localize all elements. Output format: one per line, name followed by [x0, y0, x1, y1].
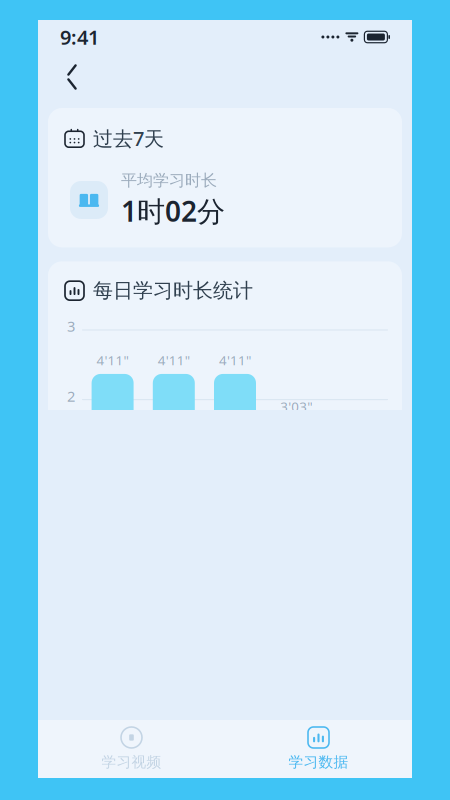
staticText: 3: [67, 316, 75, 336]
staticText: 过去7天较之前总学习时长，增加了3小时23分: [68, 699, 377, 745]
staticText: 9:41: [60, 24, 99, 50]
button[interactable]: 学习时长变化: [48, 648, 402, 764]
staticText: 学习视频: [101, 753, 161, 771]
staticText: 4'11": [97, 351, 129, 369]
staticText: 3'03": [280, 397, 312, 415]
staticText: 1时02分: [121, 192, 225, 229]
staticText: 平均学习时长: [121, 171, 217, 190]
staticText: 2: [67, 386, 75, 406]
button[interactable]: 返回: [50, 55, 94, 99]
staticText: 过去7天: [93, 125, 164, 152]
button[interactable]: 学习视频: [38, 718, 225, 780]
staticText: 4'11": [158, 351, 190, 369]
staticText: 4'11": [219, 351, 251, 369]
staticText: 学习数据: [288, 753, 348, 771]
button[interactable]: 学习数据: [225, 718, 412, 780]
staticText: 每日学习时长统计: [93, 278, 253, 303]
